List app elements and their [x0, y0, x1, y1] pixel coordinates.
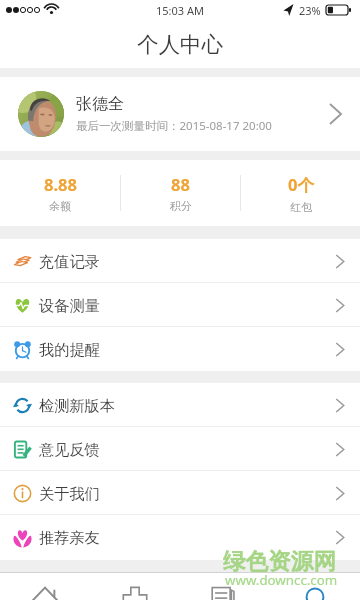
staticText: 检测新版本	[39, 396, 115, 415]
button[interactable]: Measure	[90, 573, 180, 600]
staticText: 23%	[299, 3, 321, 18]
button[interactable]: 8.88	[0, 160, 120, 226]
staticText: 15:03 AM	[156, 3, 204, 18]
button[interactable]: 0个	[241, 160, 360, 226]
staticText: 我的提醒	[39, 340, 100, 359]
button[interactable]: 推荐亲友	[0, 515, 360, 560]
button[interactable]: 关于我们	[0, 471, 360, 515]
button[interactable]: 充值记录	[0, 239, 360, 283]
button[interactable]: Profile	[270, 573, 360, 600]
staticText: 个人中心	[137, 31, 223, 58]
staticText: 张德全	[76, 94, 124, 114]
staticText: 充值记录	[39, 252, 100, 271]
button[interactable]: Home	[0, 573, 90, 600]
button[interactable]: 张德全	[0, 77, 360, 151]
staticText: 设备测量	[39, 296, 100, 315]
button[interactable]: 我的提醒	[0, 327, 360, 371]
staticText: 红包	[290, 200, 312, 214]
button[interactable]: 设备测量	[0, 283, 360, 327]
staticText: 绿色资源网	[223, 547, 336, 575]
staticText: 0个	[288, 173, 314, 196]
button[interactable]: 意见反馈	[0, 427, 360, 471]
staticText: 推荐亲友	[39, 528, 100, 547]
button[interactable]: 检测新版本	[0, 383, 360, 427]
staticText: 最后一次测量时间：2015-08-17 20:00	[76, 118, 272, 134]
staticText: 88	[171, 173, 190, 195]
button[interactable]: Records	[180, 573, 270, 600]
staticText: www.downcc.com	[225, 571, 338, 589]
staticText: 意见反馈	[39, 440, 100, 459]
staticText: 8.88	[44, 173, 77, 195]
staticText: 余额	[49, 199, 71, 213]
staticText: 积分	[170, 199, 192, 213]
staticText: 关于我们	[39, 484, 100, 503]
button[interactable]: 88	[121, 160, 240, 226]
